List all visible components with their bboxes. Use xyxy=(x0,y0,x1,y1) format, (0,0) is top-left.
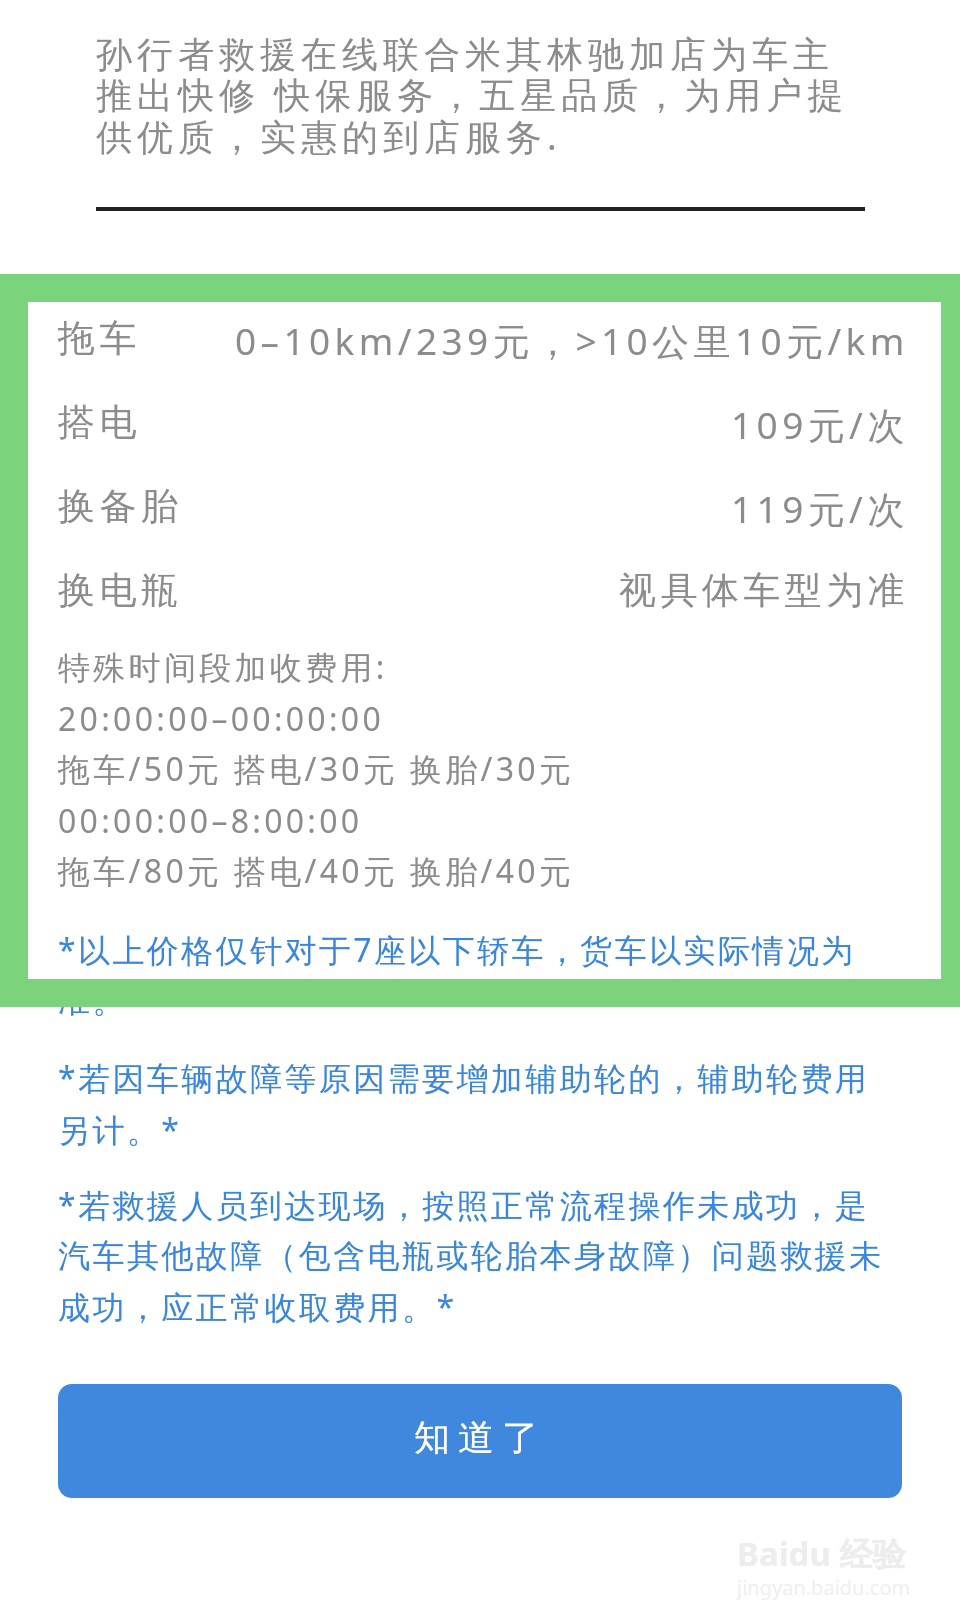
staticText: 孙行者救援在线联合米其林驰加店为车主推出快修 快保服务，五星品质，为用户提供优质… xyxy=(96,32,864,161)
staticText: 0–10km/239元，>10公里10元/km xyxy=(235,315,909,366)
button[interactable]: 换备胎 119元/次 xyxy=(58,483,909,534)
button[interactable]: 拖车 0–10km/239元，>10公里10元/km xyxy=(58,315,909,366)
staticText: 视具体车型为准 xyxy=(619,567,909,614)
staticText: 109元/次 xyxy=(731,399,909,450)
staticText: 特殊时间段加收费用: 20:00:00–00:00:00 拖车/50元 搭电/3… xyxy=(58,645,575,893)
staticText: Baidu 经验 xyxy=(737,1531,906,1576)
staticText: *若救援人员到达现场，按照正常流程操作未成功，是汽车其他故障（包含电瓶或轮胎本身… xyxy=(58,1183,898,1329)
button[interactable]: 搭电 109元/次 xyxy=(58,399,909,450)
staticText: 换备胎 xyxy=(58,483,183,530)
staticText: 搭电 xyxy=(58,399,141,446)
staticText: 换电瓶 xyxy=(58,567,183,614)
staticText: *若因车辆故障等原因需要增加辅助轮的，辅助轮费用另计。* xyxy=(58,1056,898,1152)
staticText: *以上价格仅针对于7座以下轿车，货车以实际情况为准。 xyxy=(58,928,898,1022)
button[interactable]: 知道了 xyxy=(58,1384,902,1498)
staticText: 知道了 xyxy=(410,1415,542,1460)
staticText: 拖车 xyxy=(58,315,141,362)
staticText: jingyan.baidu.com xyxy=(737,1574,911,1601)
button[interactable]: 换电瓶 视具体车型为准 xyxy=(58,567,909,614)
staticText: 119元/次 xyxy=(731,483,909,534)
